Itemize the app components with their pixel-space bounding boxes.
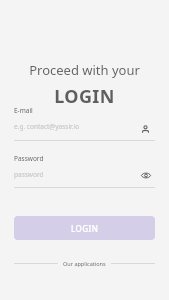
button[interactable]: Account	[137, 120, 154, 137]
staticText: password	[14, 170, 44, 179]
staticText: Password	[14, 154, 44, 163]
staticText: Our applications	[63, 260, 106, 267]
staticText: e.g. contact@yassir.io	[14, 122, 80, 131]
button[interactable]: Show password	[137, 167, 154, 184]
staticText: LOGIN	[0, 84, 169, 109]
staticText: LOGIN	[71, 223, 99, 234]
staticText: Proceed with your	[0, 61, 169, 79]
staticText: E-mail	[14, 106, 33, 115]
button[interactable]: LOGIN	[14, 216, 155, 240]
